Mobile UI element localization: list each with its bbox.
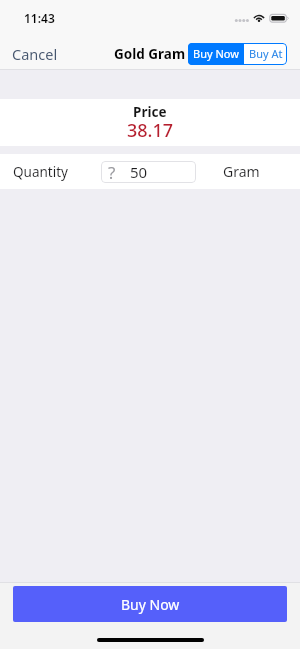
staticText: Buy Now	[193, 46, 239, 61]
staticText: ?	[108, 161, 116, 183]
staticText: 50	[130, 162, 148, 182]
button[interactable]: ?	[101, 161, 196, 183]
staticText: Buy At	[249, 46, 283, 61]
staticText: Buy Now	[121, 595, 180, 614]
staticText: Cancel	[12, 44, 58, 64]
staticText: 11:43	[24, 10, 55, 26]
staticText: Gram	[223, 162, 260, 181]
staticText: Price	[133, 103, 167, 121]
button[interactable]: Buy Now	[13, 586, 287, 622]
button[interactable]: Cancel	[0, 39, 70, 69]
button[interactable]: Buy Now	[188, 43, 244, 65]
staticText: Quantity	[13, 163, 68, 181]
staticText: Gold Gram	[114, 45, 186, 63]
button[interactable]: Buy At	[244, 43, 287, 65]
staticText: 38.17	[127, 118, 174, 143]
